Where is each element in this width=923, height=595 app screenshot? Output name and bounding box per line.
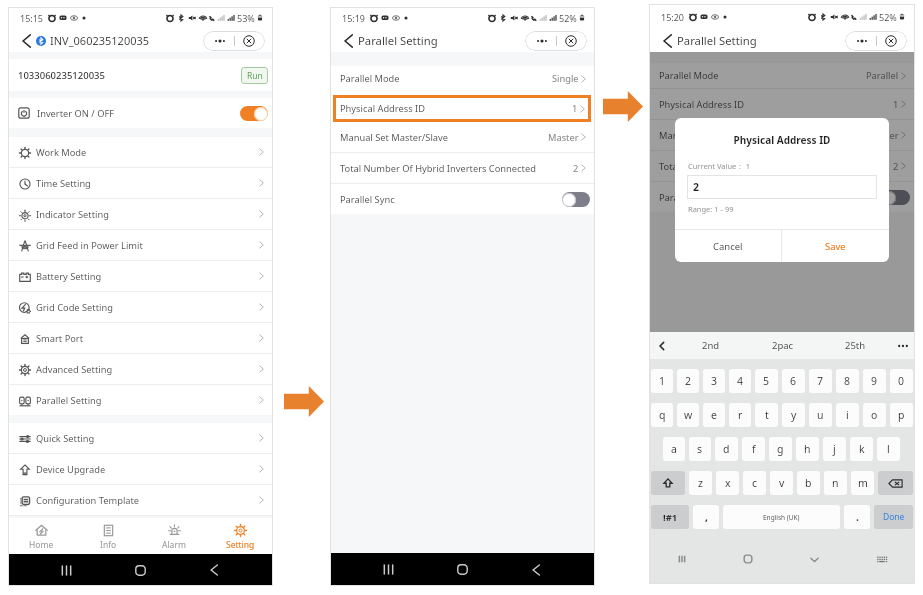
button[interactable]: Manual Set Master/Slave — [330, 122, 595, 152]
button[interactable]: Indicator Setting — [8, 199, 273, 229]
button[interactable]: Work Mode — [8, 137, 273, 167]
button[interactable]: 2nd — [675, 332, 747, 359]
button[interactable]: Back — [499, 553, 573, 586]
button[interactable]: o — [863, 403, 886, 427]
button[interactable]: 4 — [729, 369, 751, 393]
button[interactable]: g — [769, 437, 792, 461]
button[interactable]: Total Number Of Hybrid Inverters Connect… — [330, 153, 595, 183]
button[interactable]: More — [891, 332, 915, 359]
button[interactable]: Grid Feed in Power Limit — [8, 230, 273, 260]
button[interactable]: Switch keyboard — [848, 534, 915, 584]
button[interactable]: Hide keyboard — [781, 534, 848, 584]
button[interactable]: Device Upgrade — [8, 454, 273, 484]
button[interactable]: Back — [342, 31, 354, 51]
button[interactable]: 3 — [703, 369, 725, 393]
button[interactable]: Parallel Mode — [330, 66, 595, 91]
button[interactable]: r — [729, 403, 751, 427]
button[interactable]: 6 — [782, 369, 805, 393]
button[interactable]: b — [797, 471, 820, 495]
button[interactable]: Parallel Sync — [340, 184, 590, 214]
button[interactable]: Battery Setting — [8, 261, 273, 291]
staticText: Parallel Setting — [677, 33, 757, 48]
button[interactable]: More options — [528, 31, 556, 51]
button[interactable]: Advanced Setting — [8, 354, 273, 384]
button[interactable]: Close — [557, 31, 585, 51]
button[interactable]: Done — [874, 505, 913, 529]
button[interactable]: q — [651, 403, 673, 427]
button[interactable]: Smart Port — [8, 323, 273, 353]
button[interactable]: Parallel Sync — [659, 182, 910, 212]
button[interactable]: 25th — [819, 332, 891, 359]
button[interactable]: Back — [177, 554, 251, 586]
button[interactable]: 0 — [890, 369, 913, 393]
button[interactable]: m — [851, 471, 874, 495]
staticText: 1 — [572, 102, 578, 115]
button[interactable]: Info — [75, 518, 141, 554]
button[interactable]: Setting — [207, 518, 273, 554]
button[interactable]: Inverter ON / OFF — [18, 98, 268, 128]
button[interactable]: k — [850, 437, 873, 461]
button[interactable]: v — [770, 471, 793, 495]
button[interactable]: Cancel — [675, 230, 781, 262]
button[interactable]: More options — [848, 31, 876, 51]
button[interactable]: . — [844, 505, 870, 529]
button[interactable]: Backspace — [878, 471, 913, 495]
button[interactable]: Back — [20, 31, 32, 51]
button[interactable]: 7 — [809, 369, 832, 393]
button[interactable]: t — [755, 403, 778, 427]
button[interactable]: Physical Address ID — [333, 95, 591, 122]
button[interactable]: Physical Address ID — [649, 89, 915, 119]
button[interactable]: Run — [241, 67, 268, 84]
button[interactable]: a — [663, 437, 685, 461]
button[interactable]: Time Setting — [8, 168, 273, 198]
button[interactable]: n — [824, 471, 847, 495]
button[interactable]: d — [715, 437, 738, 461]
button[interactable]: Grid Code Setting — [8, 292, 273, 322]
button[interactable]: 1 — [651, 369, 673, 393]
button[interactable]: i — [836, 403, 859, 427]
button[interactable]: e — [703, 403, 725, 427]
button[interactable]: c — [743, 471, 766, 495]
button[interactable]: 9 — [863, 369, 886, 393]
button[interactable]: Save — [782, 230, 889, 262]
button[interactable]: Recents — [649, 534, 715, 584]
button[interactable]: s — [689, 437, 711, 461]
button[interactable]: z — [689, 471, 712, 495]
button[interactable]: Previous — [649, 332, 675, 359]
button[interactable]: Recents — [30, 554, 103, 586]
button[interactable]: h — [796, 437, 819, 461]
button[interactable]: Alarm — [141, 518, 207, 554]
button[interactable]: Shift — [651, 471, 685, 495]
button[interactable]: Total Number Of Hybrid Inverters Connect… — [649, 151, 915, 181]
button[interactable]: x — [716, 471, 739, 495]
button[interactable]: Close — [877, 31, 905, 51]
button[interactable]: Configuration Template — [8, 485, 273, 515]
staticText: Parallel Sync — [340, 193, 395, 206]
button[interactable]: j — [823, 437, 846, 461]
button[interactable]: English (UK) — [723, 505, 840, 529]
button[interactable]: Quick Setting — [8, 423, 273, 453]
button[interactable]: 2 — [677, 369, 699, 393]
button[interactable]: l — [877, 437, 900, 461]
button[interactable]: Back — [661, 31, 673, 51]
button[interactable]: 8 — [836, 369, 859, 393]
button[interactable]: Home — [103, 554, 177, 586]
button[interactable]: Manual Set Master/Slave — [649, 120, 915, 150]
button[interactable]: Home — [425, 553, 499, 586]
button[interactable]: u — [809, 403, 832, 427]
button[interactable]: More options — [206, 31, 234, 51]
button[interactable]: y — [782, 403, 805, 427]
button[interactable]: Parallel Mode — [649, 63, 915, 88]
button[interactable]: w — [677, 403, 699, 427]
button[interactable]: Recents — [352, 553, 425, 586]
button[interactable]: , — [693, 505, 719, 529]
button[interactable]: p — [890, 403, 913, 427]
button[interactable]: !#1 — [651, 505, 689, 529]
button[interactable]: Home — [8, 518, 75, 554]
button[interactable]: f — [742, 437, 765, 461]
button[interactable]: Home — [715, 534, 781, 584]
button[interactable]: Parallel Setting — [8, 385, 273, 415]
button[interactable]: 2pac — [747, 332, 819, 359]
button[interactable]: 5 — [755, 369, 778, 393]
button[interactable]: Close — [235, 31, 263, 51]
